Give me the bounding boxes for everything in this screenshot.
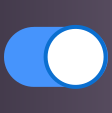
button[interactable]: Toggle, on (4, 27, 108, 87)
